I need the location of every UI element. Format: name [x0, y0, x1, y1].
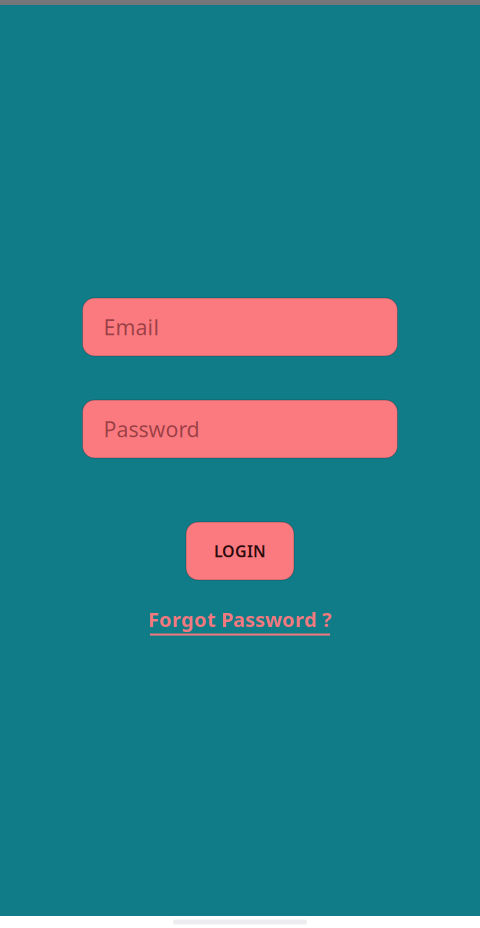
- button[interactable]: Email: [82, 298, 397, 356]
- staticText: Password: [103, 415, 199, 443]
- staticText: Forgot Password ?: [148, 606, 332, 633]
- button[interactable]: Forgot Password ?: [148, 606, 332, 636]
- button[interactable]: Password: [82, 400, 397, 458]
- staticText: LOGIN: [214, 540, 266, 562]
- staticText: Email: [103, 313, 159, 341]
- button[interactable]: LOGIN: [186, 522, 294, 580]
